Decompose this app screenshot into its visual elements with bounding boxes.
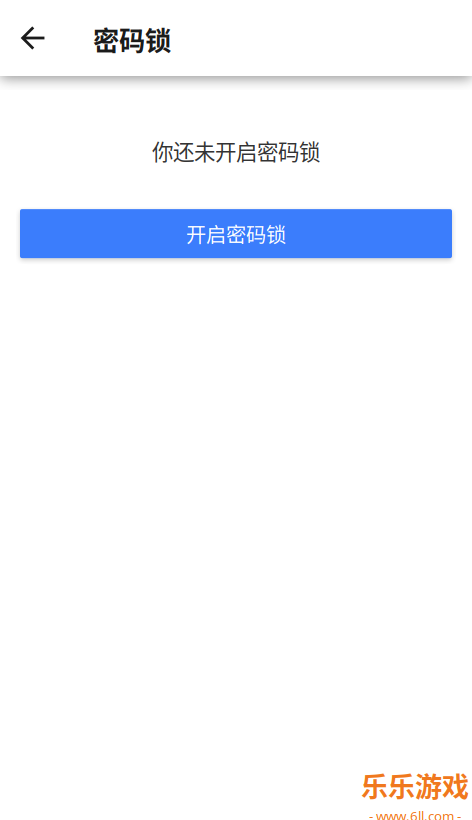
staticText: 乐乐游戏 — [361, 766, 469, 805]
staticText: 开启密码锁 — [186, 219, 286, 248]
button[interactable]: Back — [10, 0, 56, 76]
staticText: 你还未开启密码锁 — [152, 135, 320, 166]
staticText: 密码锁 — [93, 20, 171, 58]
staticText: - www.6ll.com - — [369, 807, 461, 820]
button[interactable]: 开启密码锁 — [20, 209, 452, 258]
